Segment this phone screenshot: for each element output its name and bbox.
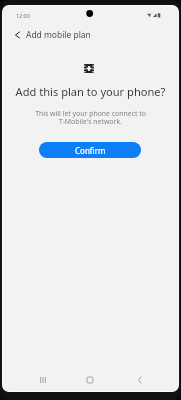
staticText: Add this plan to your phone? [3, 84, 178, 99]
staticText: 12:00 [16, 12, 30, 19]
button[interactable]: Recents [30, 367, 56, 391]
button[interactable]: Back [126, 367, 152, 391]
staticText: This will let your phone connect to T-Mo… [3, 109, 178, 126]
button[interactable]: Navigate up [9, 27, 25, 43]
button[interactable]: Confirm [39, 142, 141, 158]
staticText: Confirm [75, 145, 106, 156]
staticText: Add mobile plan [26, 29, 91, 41]
button[interactable]: Home [77, 367, 103, 391]
